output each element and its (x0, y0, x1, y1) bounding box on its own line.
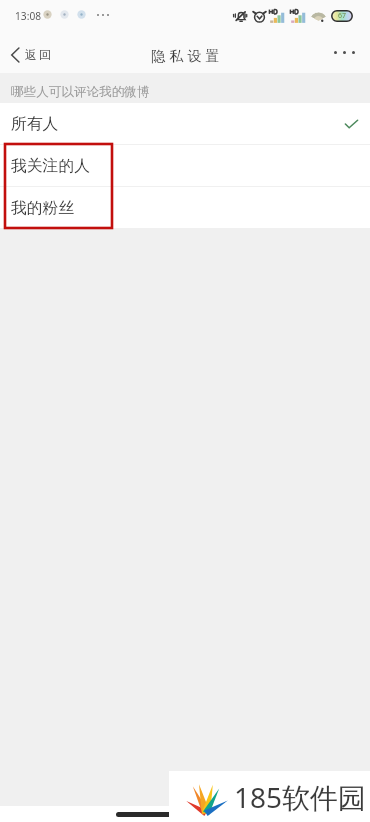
staticText: 我的粉丝 (11, 198, 75, 218)
button[interactable]: More options (322, 38, 370, 67)
staticText: 我关注的人 (11, 156, 90, 176)
staticText: 返回 (24, 47, 52, 62)
staticText: 隐私设置 (151, 48, 224, 66)
staticText: 所有人 (11, 114, 59, 134)
button[interactable]: 所有人 (0, 103, 370, 145)
button[interactable]: 我关注的人 (0, 145, 370, 187)
staticText: 哪些人可以评论我的微博 (11, 84, 150, 100)
staticText: 67 (338, 11, 347, 21)
staticText: 13:08 (15, 9, 42, 23)
button[interactable]: 我的粉丝 (0, 187, 370, 229)
button[interactable]: 返回 (0, 39, 64, 70)
staticText: 185软件园 (234, 778, 367, 816)
